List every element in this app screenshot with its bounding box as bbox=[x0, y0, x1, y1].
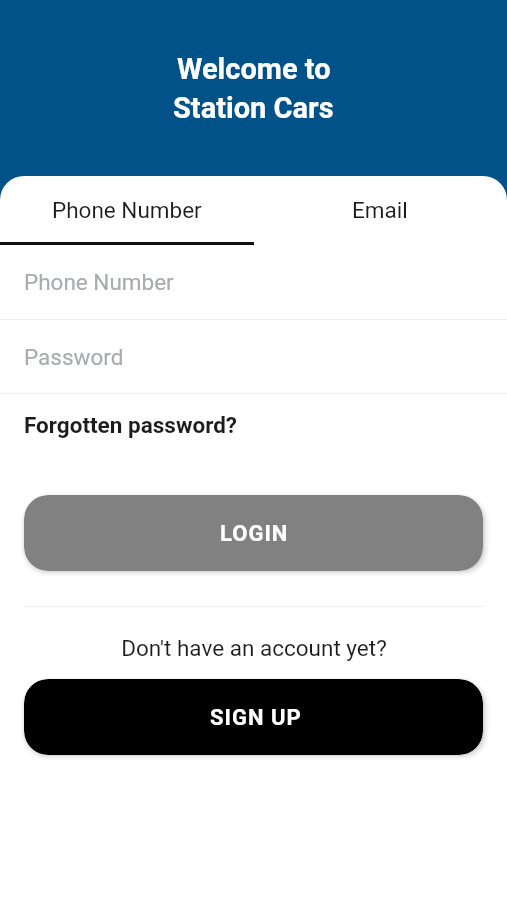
staticText: Password bbox=[24, 344, 124, 370]
button[interactable]: Password bbox=[0, 320, 507, 393]
button[interactable]: Phone Number bbox=[0, 176, 253, 245]
staticText: Don't have an account yet? bbox=[121, 635, 387, 661]
button[interactable]: Email bbox=[253, 176, 507, 245]
button[interactable]: Sign up bbox=[24, 679, 483, 755]
button[interactable]: LOGIN bbox=[24, 495, 483, 571]
staticText: Forgotten password? bbox=[24, 412, 238, 438]
staticText: SIGN UP bbox=[210, 705, 302, 731]
button[interactable]: Forgotten password? bbox=[0, 403, 507, 447]
staticText: Phone Number bbox=[52, 197, 202, 223]
staticText: Email bbox=[352, 197, 408, 223]
staticText: Phone Number bbox=[24, 269, 174, 295]
button[interactable]: Phone Number bbox=[0, 245, 507, 319]
staticText: Station Cars bbox=[173, 91, 334, 125]
staticText: Welcome to bbox=[177, 52, 331, 86]
staticText: LOGIN bbox=[220, 521, 289, 547]
